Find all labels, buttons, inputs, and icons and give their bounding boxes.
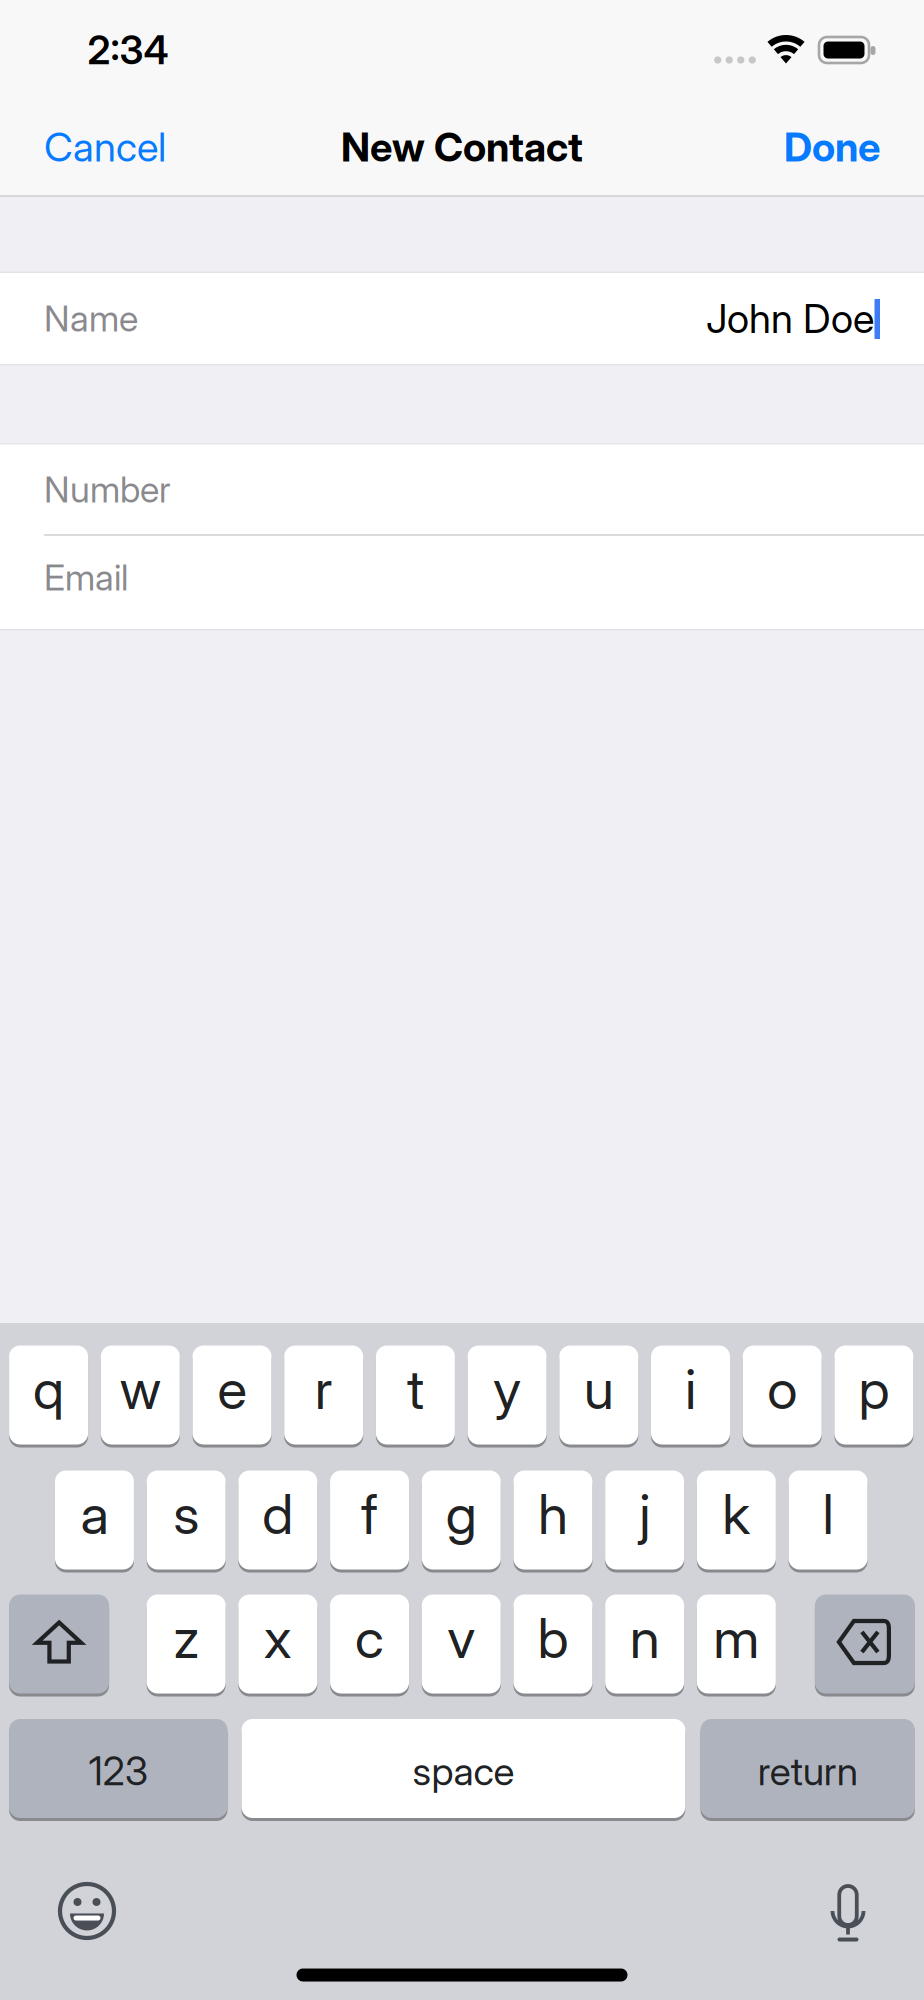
staticText: e bbox=[217, 1356, 246, 1422]
staticText: John Doe bbox=[706, 294, 874, 343]
button[interactable]: w bbox=[101, 1345, 180, 1447]
button[interactable]: Done bbox=[680, 117, 880, 177]
button[interactable]: q bbox=[9, 1345, 88, 1447]
staticText: z bbox=[173, 1605, 199, 1671]
staticText: i bbox=[685, 1356, 696, 1422]
button[interactable]: Email bbox=[0, 536, 924, 629]
staticText: s bbox=[173, 1481, 199, 1547]
staticText: o bbox=[767, 1356, 797, 1422]
staticText: 123 bbox=[89, 1747, 148, 1795]
staticText: n bbox=[630, 1605, 660, 1671]
staticText: t bbox=[407, 1356, 424, 1422]
staticText: b bbox=[537, 1605, 568, 1671]
button[interactable]: m bbox=[697, 1594, 776, 1696]
staticText: u bbox=[584, 1356, 614, 1422]
button[interactable]: Shift bbox=[9, 1594, 109, 1696]
button[interactable]: z bbox=[147, 1594, 226, 1696]
staticText: Email bbox=[44, 556, 128, 599]
button[interactable]: Number bbox=[0, 444, 924, 536]
staticText: k bbox=[722, 1481, 750, 1547]
staticText: space bbox=[412, 1747, 514, 1795]
staticText: m bbox=[713, 1605, 759, 1671]
staticText: c bbox=[355, 1605, 384, 1671]
staticText: x bbox=[264, 1605, 292, 1671]
staticText: p bbox=[858, 1356, 889, 1422]
staticText: q bbox=[33, 1356, 64, 1422]
button[interactable]: p bbox=[834, 1345, 913, 1447]
staticText: j bbox=[639, 1481, 650, 1547]
button[interactable]: y bbox=[468, 1345, 547, 1447]
button[interactable]: h bbox=[513, 1470, 592, 1572]
button[interactable]: l bbox=[789, 1470, 868, 1572]
button[interactable]: t bbox=[376, 1345, 455, 1447]
staticText: w bbox=[120, 1356, 161, 1422]
button[interactable]: Name bbox=[0, 273, 924, 364]
button[interactable]: Cancel bbox=[44, 117, 244, 177]
button[interactable]: space bbox=[241, 1719, 685, 1821]
button[interactable]: a bbox=[55, 1470, 134, 1572]
button[interactable]: c bbox=[330, 1594, 409, 1696]
button[interactable]: return bbox=[700, 1719, 915, 1821]
staticText: r bbox=[315, 1356, 333, 1422]
button[interactable]: j bbox=[605, 1470, 684, 1572]
button[interactable]: Dictate bbox=[826, 1886, 870, 1946]
staticText: v bbox=[447, 1605, 475, 1671]
staticText: a bbox=[80, 1481, 108, 1547]
button[interactable]: Numbers bbox=[9, 1719, 227, 1821]
staticText: 2:34 bbox=[87, 26, 168, 74]
button[interactable]: f bbox=[330, 1470, 409, 1572]
staticText: Cancel bbox=[44, 123, 166, 171]
button[interactable]: s bbox=[147, 1470, 226, 1572]
staticText: New Contact bbox=[341, 123, 583, 171]
button[interactable]: b bbox=[513, 1594, 592, 1696]
button[interactable]: x bbox=[238, 1594, 317, 1696]
staticText: y bbox=[493, 1356, 521, 1422]
button[interactable]: v bbox=[422, 1594, 501, 1696]
button[interactable]: e bbox=[192, 1345, 271, 1447]
button[interactable]: Emoji bbox=[55, 1879, 119, 1943]
button[interactable]: i bbox=[651, 1345, 730, 1447]
staticText: Done bbox=[784, 123, 880, 171]
button[interactable]: g bbox=[422, 1470, 501, 1572]
staticText: g bbox=[446, 1481, 477, 1547]
staticText: l bbox=[823, 1481, 834, 1547]
staticText: return bbox=[758, 1747, 858, 1795]
staticText: h bbox=[538, 1481, 568, 1547]
button[interactable]: n bbox=[605, 1594, 684, 1696]
staticText: f bbox=[361, 1481, 378, 1547]
button[interactable]: o bbox=[743, 1345, 822, 1447]
button[interactable]: d bbox=[238, 1470, 317, 1572]
button[interactable]: k bbox=[697, 1470, 776, 1572]
staticText: d bbox=[262, 1481, 293, 1547]
staticText: Name bbox=[44, 297, 138, 340]
button[interactable]: u bbox=[559, 1345, 638, 1447]
button[interactable]: Delete bbox=[815, 1594, 915, 1696]
staticText: Number bbox=[44, 468, 171, 511]
button[interactable]: r bbox=[284, 1345, 363, 1447]
